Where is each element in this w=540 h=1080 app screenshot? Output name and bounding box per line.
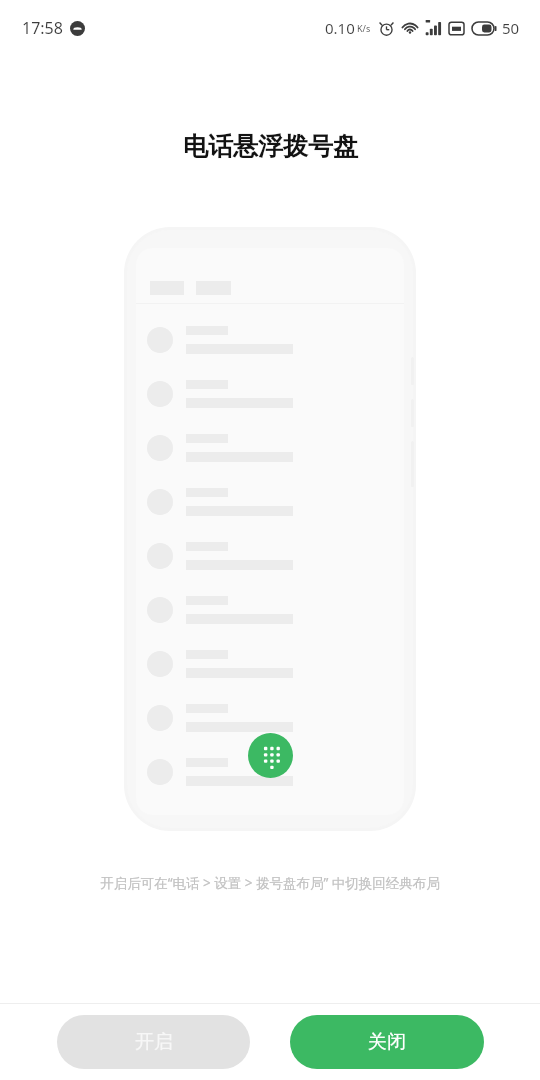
button[interactable] [136, 313, 404, 367]
staticText: 关闭 [368, 1030, 406, 1054]
staticText: 17:58 [22, 17, 63, 39]
button[interactable]: 开启 [57, 1015, 250, 1069]
button[interactable] [136, 475, 404, 529]
button[interactable] [136, 529, 404, 583]
button[interactable] [136, 745, 404, 799]
button[interactable] [136, 691, 404, 745]
button[interactable]: 关闭 [290, 1015, 484, 1069]
staticText: 电话悬浮拨号盘 [183, 131, 358, 162]
staticText: K/s [357, 22, 371, 34]
button[interactable]: Open dialpad [248, 733, 293, 778]
button[interactable] [136, 421, 404, 475]
staticText: 50 [502, 18, 520, 38]
button[interactable] [136, 637, 404, 691]
staticText: 开启 [135, 1030, 173, 1054]
button[interactable] [136, 367, 404, 421]
staticText: 0.10 [325, 18, 355, 38]
button[interactable] [136, 583, 404, 637]
staticText: 开启后可在“电话 > 设置 > 拨号盘布局” 中切换回经典布局 [100, 874, 440, 892]
